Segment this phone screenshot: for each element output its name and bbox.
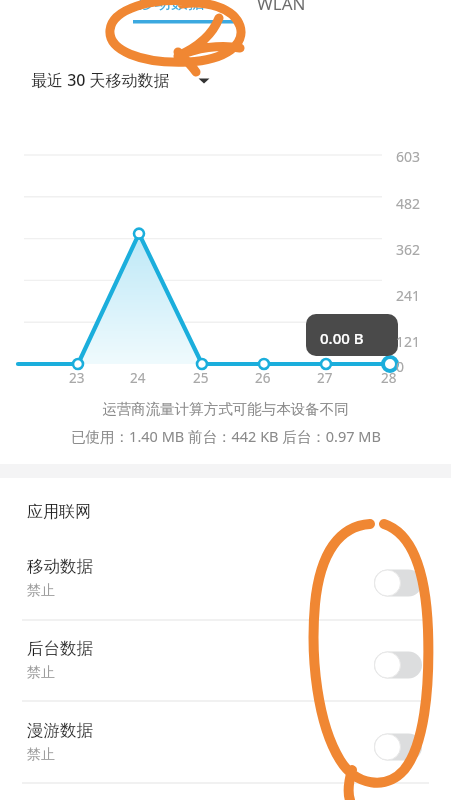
staticText: WLAN — [257, 0, 306, 15]
staticText: 362 — [396, 240, 421, 259]
button[interactable]: 移动数据 — [0, 546, 451, 620]
staticText: 漫游数据 — [27, 720, 93, 741]
staticText: 603 — [396, 147, 421, 166]
staticText: 23 — [69, 369, 85, 387]
button[interactable]: 漫游数据 — [0, 710, 451, 784]
staticText: 26 — [255, 369, 271, 387]
button[interactable]: 最近 30 天移动数据 — [0, 62, 451, 98]
staticText: 24 — [130, 369, 146, 387]
staticText: 25 — [193, 369, 209, 387]
button[interactable]: 漫游数据 开关 — [372, 732, 424, 762]
staticText: 28 — [381, 369, 397, 387]
staticText: 482 — [396, 194, 421, 213]
staticText: 移动数据 — [137, 0, 205, 13]
staticText: 运营商流量计算方式可能与本设备不同 — [102, 400, 349, 418]
staticText: 禁止 — [27, 664, 55, 682]
staticText: 0.00 B — [320, 328, 364, 348]
staticText: 禁止 — [27, 746, 55, 764]
staticText: 后台数据 — [27, 638, 93, 659]
button[interactable]: 后台数据 — [0, 628, 451, 702]
staticText: 121 — [396, 332, 421, 351]
staticText: 241 — [396, 286, 421, 305]
staticText: 27 — [317, 369, 333, 387]
staticText: 移动数据 — [27, 556, 93, 577]
staticText: 已使用：1.40 MB 前台：442 KB 后台：0.97 MB — [71, 426, 381, 446]
other: 展开 — [196, 72, 212, 88]
staticText: 0 — [396, 357, 405, 376]
staticText: 禁止 — [27, 582, 55, 600]
button[interactable]: 移动数据 开关 — [372, 568, 424, 598]
button[interactable]: WLAN — [226, 0, 336, 26]
button[interactable]: 移动数据 — [116, 0, 226, 26]
button[interactable]: 后台数据 开关 — [372, 650, 424, 680]
staticText: 应用联网 — [27, 502, 91, 522]
staticText: 最近 30 天移动数据 — [31, 69, 170, 91]
